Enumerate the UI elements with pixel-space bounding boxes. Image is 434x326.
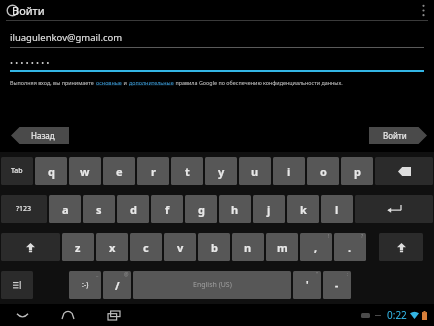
staticText: _ xyxy=(96,271,99,278)
button[interactable]: s xyxy=(83,195,115,223)
button[interactable]: Recent apps xyxy=(102,305,126,325)
staticText: Войти xyxy=(383,130,407,141)
staticText: : xyxy=(347,271,349,278)
button[interactable]: Войти xyxy=(369,127,427,144)
staticText: l xyxy=(335,202,339,217)
button[interactable]: r xyxy=(137,157,169,185)
button[interactable]: l xyxy=(321,195,353,223)
staticText: , xyxy=(314,240,318,255)
button[interactable]: / xyxy=(103,271,131,299)
button[interactable]: Switch keyboard xyxy=(1,271,33,299)
button[interactable]: Space xyxy=(133,271,291,299)
button[interactable]: b xyxy=(198,233,230,261)
button[interactable]: z xyxy=(62,233,94,261)
button[interactable]: p xyxy=(341,157,373,185)
staticText: Войти xyxy=(12,3,45,18)
button[interactable]: d xyxy=(117,195,149,223)
staticText: 0:22 xyxy=(387,308,407,322)
button[interactable]: g xyxy=(185,195,217,223)
button[interactable]: основные xyxy=(96,79,122,86)
staticText: основные xyxy=(96,79,122,86)
button[interactable]: Backspace xyxy=(375,157,433,185)
staticText: дополнительные xyxy=(129,79,174,86)
button[interactable]: i xyxy=(273,157,305,185)
button[interactable]: Shift xyxy=(379,233,423,261)
button[interactable]: Enter xyxy=(355,195,433,223)
button[interactable]: u xyxy=(239,157,271,185)
button[interactable]: - xyxy=(323,271,351,299)
button[interactable]: iluagulenkov@gmail.com xyxy=(10,31,424,48)
staticText: g xyxy=(198,202,205,217)
button[interactable]: . xyxy=(334,233,366,261)
button[interactable]: дополнительные xyxy=(129,79,174,86)
button[interactable]: n xyxy=(232,233,264,261)
button[interactable]: j xyxy=(253,195,285,223)
staticText: English (US) xyxy=(193,280,232,290)
button[interactable]: t xyxy=(171,157,203,185)
staticText: :-) xyxy=(82,280,89,290)
button[interactable]: More options xyxy=(412,0,434,20)
button[interactable]: Emoticons xyxy=(69,271,101,299)
staticText: ?123 xyxy=(16,204,32,214)
staticText: x xyxy=(109,240,116,255)
staticText: ? xyxy=(361,233,364,240)
button[interactable]: a xyxy=(49,195,81,223)
staticText: m xyxy=(277,240,288,255)
button[interactable]: f xyxy=(151,195,183,223)
button[interactable]: v xyxy=(164,233,196,261)
button[interactable]: h xyxy=(219,195,251,223)
staticText: v xyxy=(177,240,184,255)
staticText: o xyxy=(320,164,327,179)
button[interactable]: Back xyxy=(10,305,34,325)
button[interactable]: k xyxy=(287,195,319,223)
button[interactable]: o xyxy=(307,157,339,185)
staticText: правила Google по обеспечению конфиденци… xyxy=(174,79,343,86)
staticText: p xyxy=(354,164,361,179)
button[interactable]: Tab xyxy=(1,157,33,185)
button[interactable]: c xyxy=(130,233,162,261)
button[interactable] xyxy=(10,57,424,72)
staticText: j xyxy=(267,202,271,217)
button[interactable]: Shift xyxy=(1,233,60,261)
staticText: / xyxy=(115,278,120,293)
button[interactable]: m xyxy=(266,233,298,261)
button[interactable]: q xyxy=(35,157,67,185)
button[interactable]: Home xyxy=(56,305,80,325)
button[interactable]: Symbols xyxy=(1,195,47,223)
staticText: iluagulenkov@gmail.com xyxy=(10,31,123,44)
staticText: r xyxy=(151,164,156,179)
staticText: . xyxy=(348,240,352,255)
staticText: ! xyxy=(328,233,330,240)
button[interactable]: x xyxy=(96,233,128,261)
staticText: Назад xyxy=(31,130,55,141)
staticText: t xyxy=(185,164,190,179)
button[interactable]: ' xyxy=(293,271,321,299)
staticText: n xyxy=(244,240,252,255)
staticText: " xyxy=(316,271,319,278)
button[interactable]: Назад xyxy=(11,127,69,144)
staticText: y xyxy=(218,164,225,179)
button[interactable]: w xyxy=(69,157,101,185)
staticText: q xyxy=(48,164,55,179)
staticText: b xyxy=(211,240,218,255)
staticText: ' xyxy=(306,278,309,292)
staticText: a xyxy=(62,202,69,217)
staticText: i xyxy=(287,164,291,179)
staticText: h xyxy=(231,202,239,217)
staticText: Tab xyxy=(11,166,23,176)
staticText: @ xyxy=(124,271,129,278)
staticText: - xyxy=(335,278,339,292)
staticText: s xyxy=(96,202,102,217)
button[interactable]: , xyxy=(300,233,332,261)
staticText: Выполняя вход, вы принимаете xyxy=(10,79,96,86)
staticText: e xyxy=(116,164,123,179)
staticText: f xyxy=(165,202,170,217)
staticText: k xyxy=(300,202,307,217)
button[interactable]: e xyxy=(103,157,135,185)
staticText: w xyxy=(80,164,90,179)
button[interactable]: y xyxy=(205,157,237,185)
staticText: c xyxy=(143,240,149,255)
staticText: d xyxy=(130,202,137,217)
staticText: и xyxy=(122,79,129,86)
staticText: z xyxy=(75,240,81,255)
